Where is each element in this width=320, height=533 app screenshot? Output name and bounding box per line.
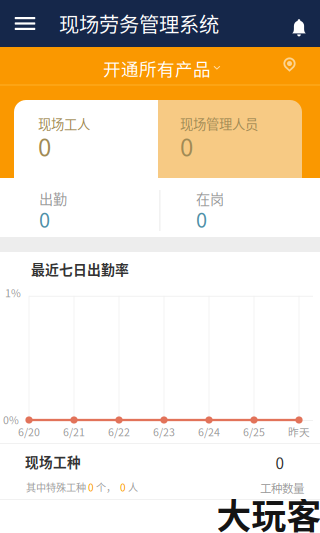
staticText: 0 <box>120 480 126 494</box>
staticText: 人 <box>126 480 138 494</box>
staticText: 大玩客 <box>216 489 320 533</box>
staticText: 6/21 <box>63 424 85 439</box>
staticText: 昨天 <box>288 424 310 439</box>
staticText: 现场劳务管理系统 <box>59 9 219 38</box>
staticText: 1% <box>5 285 21 300</box>
staticText: 现场工人 <box>38 114 90 133</box>
staticText: 工种数量 <box>260 480 304 496</box>
staticText: 最近七日出勤率 <box>31 259 129 279</box>
staticText: 0 <box>180 129 193 163</box>
button[interactable]: Location <box>277 53 307 81</box>
staticText: 0 <box>38 129 51 163</box>
staticText: 6/23 <box>153 424 175 439</box>
staticText: 现场管理人员 <box>180 114 258 133</box>
staticText: 6/24 <box>198 424 220 439</box>
staticText: 现场工种 <box>25 452 81 471</box>
staticText: 0 <box>275 451 284 474</box>
staticText: 在岗 <box>196 188 224 208</box>
staticText: 6/22 <box>108 424 130 439</box>
staticText: 其中特殊工种 <box>26 480 88 494</box>
staticText: 开通所有产品 <box>103 55 211 81</box>
staticText: 6/25 <box>243 424 265 439</box>
staticText: 出勤 <box>39 188 67 208</box>
staticText: 个， <box>94 480 120 494</box>
button[interactable]: Menu <box>5 0 45 47</box>
button[interactable]: 开通所有产品 <box>102 55 222 81</box>
staticText: 6/20 <box>18 424 40 439</box>
button[interactable]: Notifications <box>282 4 316 51</box>
staticText: 0 <box>39 204 50 233</box>
staticText: 0% <box>3 412 19 427</box>
staticText: 0 <box>88 480 94 494</box>
staticText: 0 <box>196 204 207 233</box>
